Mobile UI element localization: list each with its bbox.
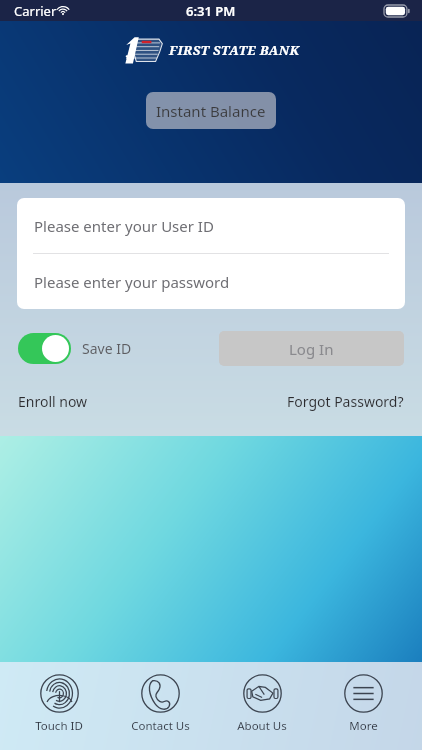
- staticText: Save ID: [82, 339, 132, 358]
- staticText: Enroll now: [18, 392, 88, 411]
- button[interactable]: Contact Us: [117, 674, 203, 734]
- staticText: Instant Balance: [156, 101, 266, 121]
- staticText: More: [349, 718, 378, 734]
- staticText: Log In: [289, 339, 334, 359]
- button[interactable]: Forgot Password?: [287, 392, 404, 411]
- button[interactable]: About Us: [219, 674, 305, 734]
- button[interactable]: Enroll now: [18, 392, 88, 411]
- button[interactable]: More: [320, 674, 406, 734]
- button[interactable]: Touch ID: [16, 674, 102, 734]
- button[interactable]: Please enter your password: [17, 254, 405, 309]
- staticText: Please enter your password: [34, 272, 230, 292]
- staticText: 6:31 PM: [186, 2, 236, 20]
- staticText: Touch ID: [35, 718, 83, 734]
- staticText: About Us: [237, 718, 287, 734]
- staticText: Forgot Password?: [287, 392, 404, 411]
- button[interactable]: Instant Balance: [146, 92, 276, 129]
- staticText: Carrier: [14, 2, 57, 20]
- staticText: FIRST STATE BANK: [169, 41, 300, 59]
- button[interactable]: Please enter your User ID: [17, 198, 405, 253]
- button[interactable]: Save ID: [18, 333, 132, 364]
- staticText: Please enter your User ID: [34, 216, 214, 236]
- button[interactable]: Log In: [219, 331, 404, 366]
- staticText: Contact Us: [131, 718, 190, 734]
